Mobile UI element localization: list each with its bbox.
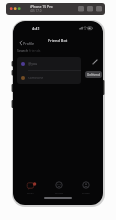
button[interactable]: Chats	[24, 181, 37, 195]
staticText: Profile	[82, 191, 90, 194]
staticText: @you	[28, 61, 38, 66]
staticText: Unfriend	[87, 73, 100, 77]
staticText: Friend Bot	[48, 38, 68, 43]
staticText: Search	[17, 48, 29, 53]
button[interactable]: Profile	[80, 181, 92, 195]
button[interactable]: Profile	[19, 39, 35, 47]
staticText: Chats	[27, 191, 34, 194]
button[interactable]	[91, 57, 100, 66]
staticText: someone	[28, 75, 44, 80]
button[interactable]: someone	[17, 71, 81, 84]
staticText: 4:41	[32, 26, 40, 31]
staticText: Profile	[23, 41, 35, 46]
button[interactable]: @you	[17, 57, 81, 70]
button[interactable]: Unfriend	[85, 71, 102, 78]
staticText: iOS 17.0	[30, 9, 42, 13]
staticText: friends	[29, 48, 41, 53]
button[interactable]: Stories	[53, 181, 65, 195]
staticText: iPhone 15 Pro	[30, 4, 53, 9]
staticText: Stories	[55, 191, 64, 194]
